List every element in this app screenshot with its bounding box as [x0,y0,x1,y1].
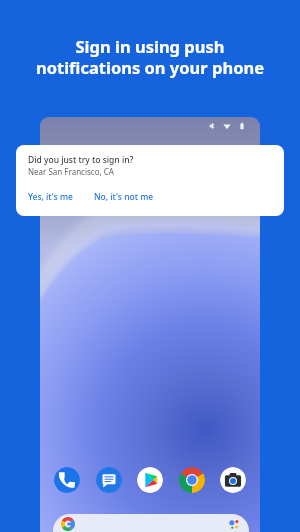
button[interactable]: App [96,467,122,493]
staticText: Did you just try to sign in? [28,154,134,166]
button[interactable]: App [220,467,246,493]
staticText: Yes, it's me [28,191,73,203]
staticText: Near San Francisco, CA [28,166,114,177]
button[interactable]: App [54,467,80,493]
button[interactable]: No, it's not me [92,189,156,205]
button[interactable]: Search [53,514,249,532]
staticText: Sign in using push notifications on your… [14,35,286,79]
button[interactable]: Yes, it's me [26,189,75,205]
button[interactable]: Did you just try to sign in? [16,145,284,216]
button[interactable]: App [137,467,163,493]
staticText: No, it's not me [94,191,154,203]
button[interactable]: App [179,467,205,493]
